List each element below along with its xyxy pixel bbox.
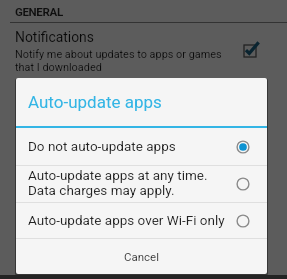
staticText: Notifications bbox=[15, 29, 94, 45]
button[interactable]: Do not auto-update apps bbox=[16, 128, 267, 165]
staticText: Auto-update apps bbox=[28, 92, 162, 112]
staticText: GENERAL bbox=[15, 5, 63, 18]
staticText: that I downloaded bbox=[15, 61, 102, 74]
button[interactable]: Auto-update apps at any time. bbox=[16, 166, 267, 202]
button[interactable]: Notifications checkbox bbox=[244, 39, 262, 57]
staticText: Auto-update apps over Wi-Fi only bbox=[28, 212, 225, 228]
button[interactable]: Cancel bbox=[16, 239, 267, 274]
staticText: Auto-update apps at any time. bbox=[28, 167, 208, 183]
button[interactable]: Auto-update apps over Wi-Fi only bbox=[16, 203, 267, 238]
staticText: Data charges may apply. bbox=[28, 182, 175, 198]
staticText: Cancel bbox=[124, 250, 160, 263]
staticText: Do not auto-update apps bbox=[28, 138, 176, 154]
staticText: Notify me about updates to apps or games bbox=[15, 48, 222, 61]
